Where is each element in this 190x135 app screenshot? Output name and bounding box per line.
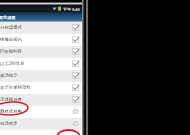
button[interactable]: 定体箱设置: [0, 94, 82, 106]
button[interactable]: 静默式充电: [0, 106, 82, 118]
staticText: 下午 3:46: [63, 6, 80, 12]
button[interactable]: 按键出省讯: [0, 34, 82, 46]
button[interactable]: 以上2的信息: [0, 58, 82, 70]
other: Toggle: [72, 48, 79, 55]
staticText: 定体箱设置: [0, 96, 22, 102]
other: Toggle: [72, 36, 79, 43]
other: Toggle: [72, 84, 79, 91]
button[interactable]: 自动同步: [0, 118, 82, 130]
other: Toggle: [72, 60, 79, 67]
other: Toggle: [72, 96, 79, 103]
other: Settings: [72, 108, 79, 115]
staticText: IP压缩中转: [0, 48, 22, 54]
button[interactable]: 其它设置: [0, 12, 82, 22]
staticText: 自动同步: [0, 120, 18, 126]
staticText: 显示全单移动栏: [0, 84, 31, 90]
button[interactable]: 显示全单移动栏: [0, 82, 82, 94]
staticText: 震动提示: [0, 72, 18, 78]
other: Settings: [72, 120, 79, 127]
staticText: 其它设置: [0, 14, 16, 20]
staticText: 静默式充电: [0, 108, 22, 114]
staticText: 以上2的信息: [0, 60, 25, 66]
other: Toggle: [72, 24, 79, 31]
button[interactable]: 开启读模式: [0, 22, 82, 34]
staticText: 按键出省讯: [0, 36, 22, 42]
staticText: 开启读模式: [0, 24, 22, 30]
button[interactable]: IP压缩中转: [0, 46, 82, 58]
button[interactable]: 震动提示: [0, 70, 82, 82]
other: Toggle: [72, 72, 79, 79]
